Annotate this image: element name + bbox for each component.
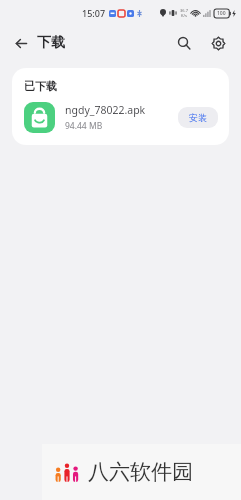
button[interactable]: ngdy_78022.apk [12, 102, 229, 133]
staticText: 100 [217, 10, 226, 17]
other: Back [12, 36, 27, 51]
staticText: K/s [181, 13, 187, 18]
staticText: 94.44 MB [65, 120, 103, 132]
button[interactable]: Search [171, 30, 197, 56]
staticText: 下载 [37, 34, 65, 52]
button[interactable]: Back [8, 30, 69, 56]
staticText: 15:07 [82, 7, 106, 19]
staticText: 36.7 [180, 8, 188, 13]
staticText: 安装 [189, 112, 207, 123]
staticText: ngdy_78022.apk [65, 103, 146, 117]
staticText: 八六软件园 [88, 459, 193, 485]
button[interactable]: 安装 [178, 107, 218, 128]
staticText: 已下载 [24, 79, 57, 93]
button[interactable]: Settings [205, 30, 231, 56]
